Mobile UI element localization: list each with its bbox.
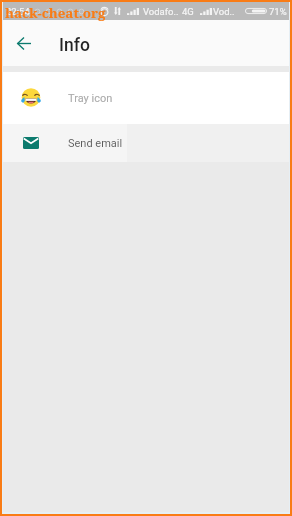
button[interactable]: Back xyxy=(9,28,39,58)
staticText: Info xyxy=(59,35,90,56)
staticText: 22:54 xyxy=(6,6,30,17)
staticText: 71% xyxy=(269,6,287,17)
staticText: Tray icon xyxy=(68,92,113,105)
staticText: Vodafo.. xyxy=(143,6,179,17)
button[interactable]: Tray icon xyxy=(3,72,289,124)
staticText: 4G xyxy=(182,6,194,17)
button[interactable]: Send email xyxy=(3,124,289,162)
staticText: Vod.. xyxy=(213,6,235,17)
staticText: hack-cheat.org xyxy=(5,4,106,22)
staticText: Send email xyxy=(68,137,123,150)
